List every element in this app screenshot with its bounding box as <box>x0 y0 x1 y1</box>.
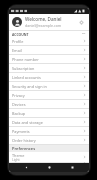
staticText: Theme <box>12 153 25 158</box>
button[interactable]: Order history <box>9 136 89 144</box>
button[interactable]: Back <box>20 163 32 172</box>
staticText: Profile <box>12 39 83 44</box>
staticText: Email <box>12 48 83 53</box>
staticText: Backup <box>12 111 83 116</box>
button[interactable]: Recent apps <box>66 163 78 172</box>
button[interactable]: Linked accounts <box>9 73 89 81</box>
button[interactable]: Welcome, Daniel <box>9 14 89 30</box>
staticText: Phone number <box>12 57 83 62</box>
button[interactable]: Profile <box>9 37 89 45</box>
button[interactable]: Phone number <box>9 55 89 63</box>
staticText: daniel@example.com <box>25 23 62 28</box>
staticText: Light <box>12 158 20 162</box>
staticText: Payments <box>12 129 83 134</box>
staticText: Subscription <box>12 66 83 71</box>
button[interactable]: Payments <box>9 127 89 135</box>
staticText: Linked accounts <box>12 75 83 80</box>
button[interactable]: Home <box>43 163 55 172</box>
staticText: Devices <box>12 102 83 107</box>
staticText: ••• <box>82 32 86 36</box>
staticText: Privacy <box>12 93 83 98</box>
button[interactable]: Theme <box>9 152 89 162</box>
button[interactable]: Subscription <box>9 64 89 72</box>
button[interactable]: Privacy <box>9 91 89 99</box>
staticText: Data and storage <box>12 120 83 125</box>
button[interactable]: Backup <box>9 109 89 117</box>
button[interactable]: Security and sign in <box>9 82 89 90</box>
staticText: Security and sign in <box>12 84 83 89</box>
button[interactable]: Email <box>9 46 89 54</box>
staticText: Welcome, Daniel <box>25 16 62 22</box>
staticText: Preferences <box>12 146 36 151</box>
button[interactable]: Data and storage <box>9 118 89 126</box>
button[interactable]: Edit profile <box>77 18 86 27</box>
staticText: Order history <box>12 138 83 143</box>
button[interactable]: Devices <box>9 100 89 108</box>
staticText: ACCOUNT <box>12 32 29 37</box>
